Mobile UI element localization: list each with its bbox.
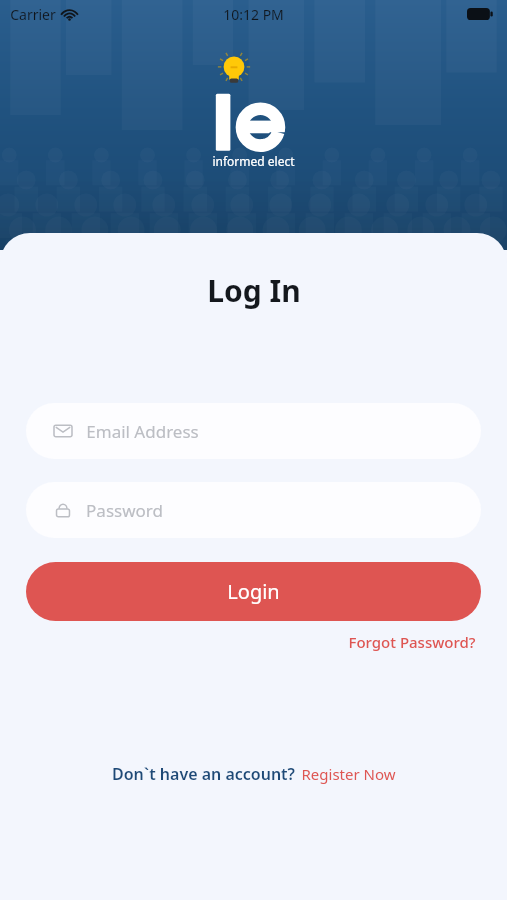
staticText: Don`t have an account? <box>112 763 295 785</box>
staticText: Email Address <box>86 420 199 443</box>
staticText: Carrier <box>10 5 56 24</box>
staticText: Log In <box>207 270 301 311</box>
button[interactable]: Email Address <box>26 403 481 459</box>
button[interactable]: Don`t have an account? <box>104 759 404 789</box>
staticText: Forgot Password? <box>348 632 476 652</box>
staticText: Login <box>227 578 280 605</box>
button[interactable]: Password <box>26 482 481 538</box>
button[interactable]: Login <box>26 562 481 621</box>
staticText: Register Now <box>301 764 396 784</box>
staticText: Password <box>86 499 163 522</box>
staticText: 10:12 PM <box>223 5 284 24</box>
button[interactable]: Forgot Password? <box>346 629 478 655</box>
staticText: informed elect <box>212 153 295 169</box>
